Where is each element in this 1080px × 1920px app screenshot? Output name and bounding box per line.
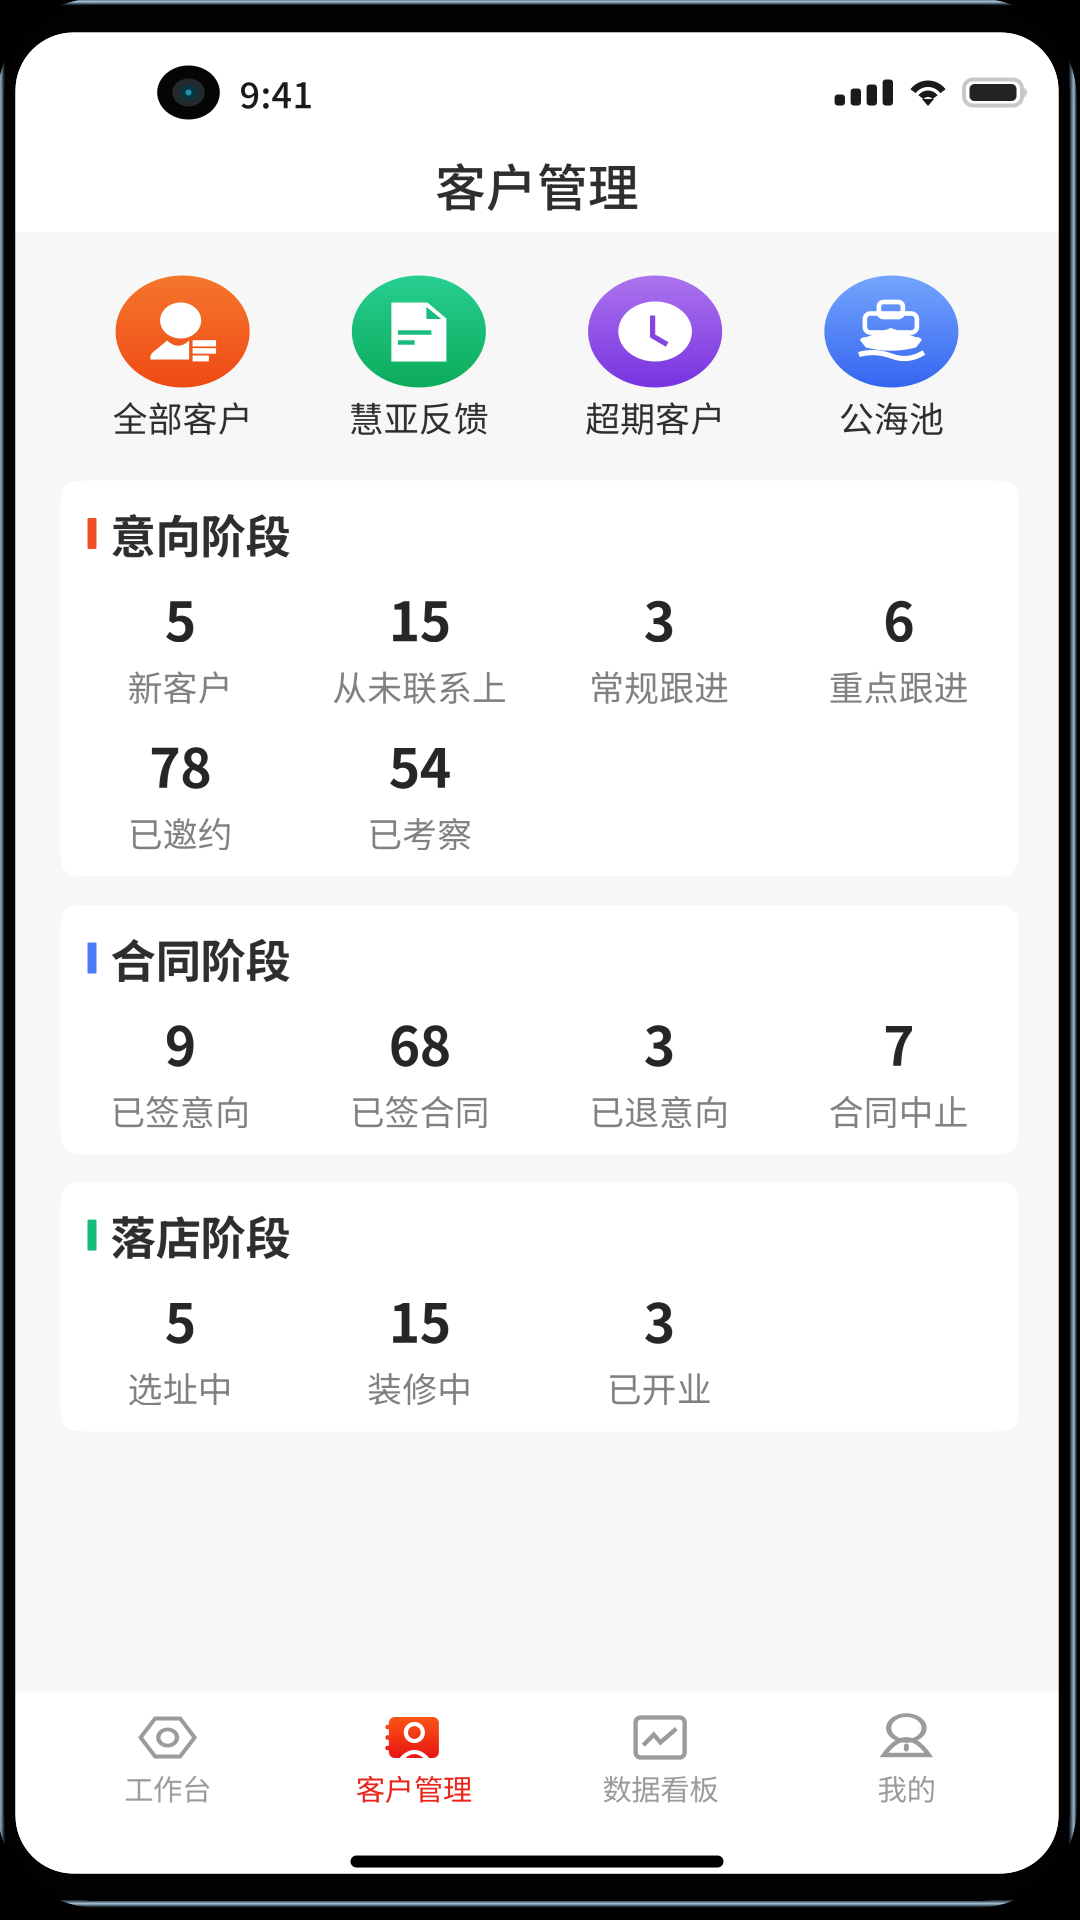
staticText: 3 — [644, 1004, 675, 1081]
button[interactable]: 68 — [300, 1004, 539, 1135]
staticText: 全部客户 — [113, 391, 253, 442]
button[interactable]: 超期客户 — [537, 275, 773, 442]
button[interactable]: 3 — [539, 1004, 779, 1135]
staticText: 常规跟进 — [589, 661, 729, 711]
button[interactable]: 3 — [539, 579, 779, 711]
staticText: 重点跟进 — [829, 661, 969, 711]
staticText: 超期客户 — [585, 391, 725, 442]
button[interactable]: 5 — [60, 1281, 300, 1412]
staticText: 公海池 — [839, 391, 944, 442]
staticText: 5 — [165, 1281, 196, 1358]
staticText: 从未联系上 — [332, 661, 507, 711]
staticText: 数据看板 — [602, 1766, 718, 1809]
staticText: 合同中止 — [829, 1085, 969, 1135]
staticText: 7 — [883, 1004, 914, 1081]
button[interactable]: 客户管理 — [291, 1716, 537, 1809]
staticText: 已考察 — [367, 807, 472, 857]
staticText: 工作台 — [124, 1766, 211, 1809]
staticText: 已开业 — [607, 1362, 712, 1412]
staticText: 6 — [883, 579, 914, 656]
staticText: 意向阶段 — [110, 501, 290, 566]
staticText: 15 — [389, 1281, 451, 1358]
staticText: 3 — [644, 579, 675, 656]
button[interactable]: 我的 — [783, 1716, 1029, 1809]
staticText: 已签合同 — [350, 1085, 490, 1135]
button[interactable]: 9 — [60, 1004, 300, 1135]
staticText: 78 — [149, 726, 211, 803]
staticText: 68 — [389, 1004, 451, 1081]
button[interactable]: 7 — [779, 1004, 1018, 1135]
button[interactable]: 公海池 — [773, 275, 1009, 442]
staticText: 落店阶段 — [110, 1202, 290, 1268]
staticText: 54 — [389, 726, 451, 803]
button[interactable]: 工作台 — [44, 1716, 291, 1809]
button[interactable]: 数据看板 — [537, 1716, 783, 1809]
button[interactable]: 3 — [539, 1281, 779, 1412]
button[interactable]: 全部客户 — [64, 275, 301, 442]
staticText: 慧亚反馈 — [349, 391, 489, 442]
staticText: 客户管理 — [356, 1766, 472, 1809]
staticText: 15 — [389, 579, 451, 656]
button[interactable]: 15 — [300, 1281, 539, 1412]
staticText: 新客户 — [128, 661, 233, 711]
button[interactable]: 15 — [300, 579, 539, 711]
button[interactable]: 54 — [300, 726, 539, 857]
staticText: 选址中 — [128, 1362, 233, 1412]
staticText: 我的 — [877, 1766, 935, 1809]
button[interactable]: 慧亚反馈 — [301, 275, 537, 442]
staticText: 客户管理 — [435, 148, 639, 221]
staticText: 已签意向 — [110, 1085, 250, 1135]
button[interactable]: 78 — [60, 726, 300, 857]
staticText: 装修中 — [367, 1362, 472, 1412]
staticText: 9:41 — [239, 66, 313, 118]
staticText: 已退意向 — [589, 1085, 729, 1135]
button[interactable]: 6 — [779, 579, 1018, 711]
staticText: 3 — [644, 1281, 675, 1358]
staticText: 合同阶段 — [110, 925, 290, 991]
staticText: 5 — [165, 579, 196, 656]
button[interactable]: 5 — [60, 579, 300, 711]
staticText: 9 — [165, 1004, 196, 1081]
staticText: 已邀约 — [128, 807, 233, 857]
